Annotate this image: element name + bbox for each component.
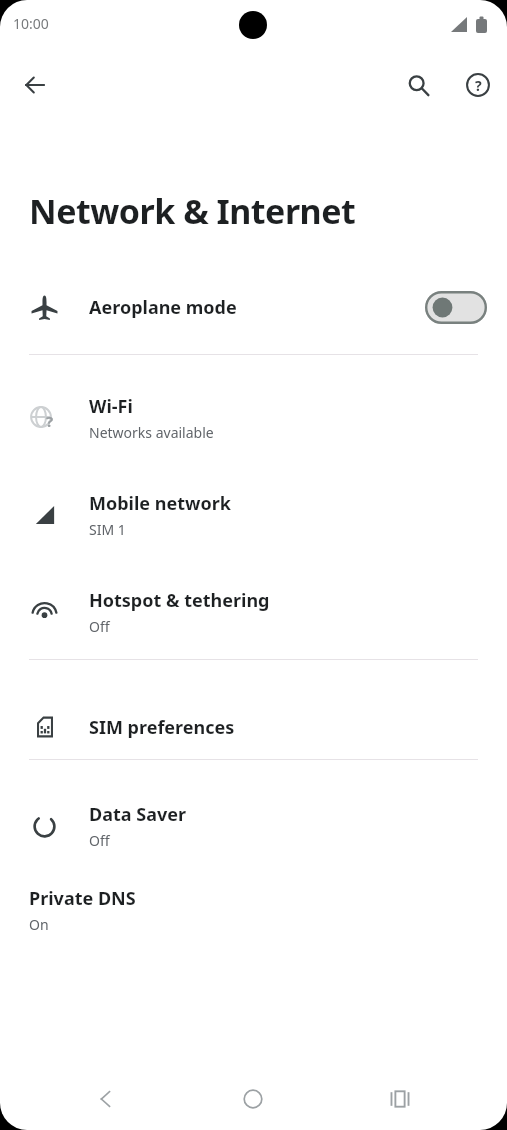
button[interactable]: Hotspot & tethering [0, 576, 507, 648]
button[interactable]: Aeroplane mode [0, 276, 507, 338]
button[interactable]: Home [229, 1075, 277, 1123]
staticText: ? [475, 76, 482, 95]
button[interactable]: Help [454, 61, 502, 109]
button[interactable]: Private DNS [0, 886, 507, 958]
staticText: SIM 1 [89, 520, 126, 539]
staticText: Off [89, 617, 110, 636]
staticText: Hotspot & tethering [89, 588, 270, 613]
staticText: Network & Internet [29, 188, 356, 234]
staticText: Networks available [89, 423, 214, 442]
staticText: ? [46, 411, 54, 431]
button[interactable]: Recent apps [376, 1075, 424, 1123]
button[interactable]: Mobile network [0, 479, 507, 551]
button[interactable]: Back [82, 1075, 130, 1123]
staticText: Off [89, 831, 110, 850]
staticText: SIM preferences [89, 715, 235, 740]
staticText: Wi-Fi [89, 394, 133, 419]
button[interactable]: ? [0, 382, 507, 454]
staticText: On [29, 915, 49, 934]
staticText: Data Saver [89, 802, 187, 827]
staticText: Aeroplane mode [89, 295, 425, 320]
button[interactable]: Data Saver [0, 790, 507, 862]
staticText: Private DNS [29, 886, 136, 911]
button[interactable]: SIM preferences [0, 702, 507, 752]
button[interactable]: Back [11, 61, 59, 109]
staticText: 10:00 [13, 14, 49, 33]
button[interactable]: Search [394, 61, 442, 109]
staticText: Mobile network [89, 491, 231, 516]
